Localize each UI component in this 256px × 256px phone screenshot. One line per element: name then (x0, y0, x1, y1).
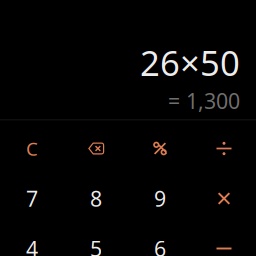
staticText: 26×50 (140, 39, 240, 85)
button[interactable]: 6 (128, 223, 192, 256)
button[interactable]: 5 (64, 223, 128, 256)
staticText: 4 (26, 234, 38, 256)
staticText: C (26, 136, 38, 161)
button[interactable]: Divide (192, 123, 256, 173)
button[interactable]: Delete (64, 123, 128, 173)
staticText: 8 (90, 184, 102, 213)
staticText: 6 (154, 234, 166, 256)
button[interactable]: Percent (128, 123, 192, 173)
staticText: 5 (90, 234, 102, 256)
staticText: 7 (26, 184, 38, 213)
button[interactable]: Multiply (192, 173, 256, 223)
staticText: = 1,300 (168, 86, 240, 115)
button[interactable]: Clear (0, 123, 64, 173)
button[interactable]: 4 (0, 223, 64, 256)
button[interactable]: Subtract (192, 223, 256, 256)
button[interactable]: 7 (0, 173, 64, 223)
button[interactable]: 9 (128, 173, 192, 223)
button[interactable]: 8 (64, 173, 128, 223)
staticText: 9 (154, 184, 166, 213)
